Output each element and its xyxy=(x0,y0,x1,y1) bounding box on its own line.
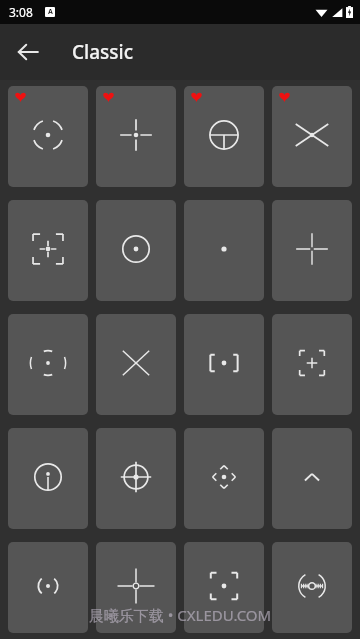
button[interactable]: Reticle 6 xyxy=(96,200,176,301)
button[interactable]: Reticle 12 xyxy=(272,314,352,415)
button[interactable]: Reticle 17 xyxy=(8,542,88,633)
button[interactable]: Reticle 9 xyxy=(8,314,88,415)
staticText: 3:08 xyxy=(9,4,33,20)
button[interactable]: Reticle 11 xyxy=(184,314,264,415)
button[interactable]: Reticle 5 xyxy=(8,200,88,301)
button[interactable]: Reticle 8 xyxy=(272,200,352,301)
button[interactable]: Reticle 15 xyxy=(184,428,264,529)
button[interactable]: Reticle 2 xyxy=(96,86,176,187)
button[interactable]: Reticle 10 xyxy=(96,314,176,415)
staticText: Classic xyxy=(72,39,133,65)
button[interactable]: Back xyxy=(4,28,52,76)
button[interactable]: Reticle 19 xyxy=(184,542,264,633)
button[interactable]: Reticle 18 xyxy=(96,542,176,633)
button[interactable]: Reticle 13 xyxy=(8,428,88,529)
staticText: 晨曦乐下载 • CXLEDU.COM xyxy=(0,605,360,625)
button[interactable]: Reticle 14 xyxy=(96,428,176,529)
button[interactable]: Reticle 4 xyxy=(272,86,352,187)
button[interactable]: Reticle 16 xyxy=(272,428,352,529)
button[interactable]: Reticle 20 xyxy=(272,542,352,633)
staticText: A xyxy=(48,7,53,17)
button[interactable]: Reticle 7 xyxy=(184,200,264,301)
button[interactable]: Reticle 1 xyxy=(8,86,88,187)
button[interactable]: Reticle 3 xyxy=(184,86,264,187)
